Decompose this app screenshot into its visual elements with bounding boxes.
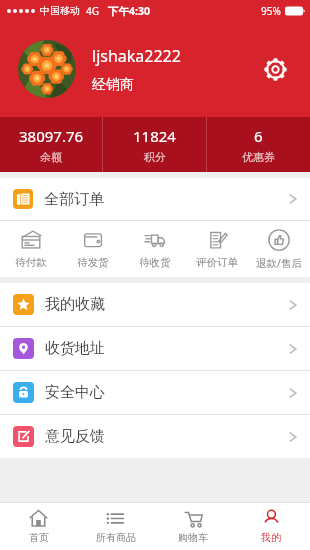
staticText: 待付款 <box>15 256 47 269</box>
staticText: 安全中心 <box>45 383 105 402</box>
staticText: 购物车 <box>178 531 208 544</box>
staticText: 评价订单 <box>196 256 238 269</box>
staticText: 收货地址 <box>45 339 105 358</box>
button[interactable]: 我的收藏 <box>0 283 310 326</box>
button[interactable]: 待发货 <box>62 221 124 277</box>
staticText: 意见反馈 <box>45 427 105 446</box>
button[interactable]: 全部订单 <box>0 178 310 220</box>
button[interactable]: Settings <box>258 52 292 86</box>
staticText: 待发货 <box>77 256 109 269</box>
staticText: 我的 <box>261 531 281 544</box>
button[interactable]: 待付款 <box>0 221 62 277</box>
staticText: 余额 <box>40 150 62 164</box>
button[interactable]: 38097.76 <box>0 117 102 172</box>
staticText: 下午4:30 <box>108 4 150 18</box>
staticText: 4G <box>86 4 99 18</box>
button[interactable]: ljshaka2222 <box>0 21 310 117</box>
staticText: 全部订单 <box>44 190 104 209</box>
staticText: 6 <box>254 126 263 146</box>
staticText: 我的收藏 <box>45 295 105 314</box>
staticText: 中国移动 <box>40 4 80 17</box>
button[interactable]: 购物车 <box>154 503 232 550</box>
staticText: 经销商 <box>92 76 134 94</box>
button[interactable]: 11824 <box>103 117 206 172</box>
button[interactable]: 评价订单 <box>186 221 248 277</box>
button[interactable]: 退款/售后 <box>248 221 310 277</box>
button[interactable]: 意见反馈 <box>0 415 310 458</box>
button[interactable]: 待收货 <box>124 221 186 277</box>
staticText: 11824 <box>133 126 176 146</box>
button[interactable]: 收货地址 <box>0 327 310 370</box>
staticText: 退款/售后 <box>256 256 302 270</box>
staticText: 积分 <box>144 150 166 164</box>
button[interactable]: 所有商品 <box>77 503 154 550</box>
staticText: 待收货 <box>139 256 171 269</box>
staticText: 95% <box>261 4 281 18</box>
button[interactable]: 我的 <box>232 503 310 550</box>
button[interactable]: 首页 <box>0 503 77 550</box>
staticText: 所有商品 <box>96 531 136 544</box>
button[interactable]: 6 <box>207 117 310 172</box>
staticText: 首页 <box>29 531 49 544</box>
staticText: 38097.76 <box>19 126 84 146</box>
staticText: ljshaka2222 <box>92 45 181 67</box>
button[interactable]: 安全中心 <box>0 371 310 414</box>
staticText: 优惠券 <box>242 150 275 164</box>
